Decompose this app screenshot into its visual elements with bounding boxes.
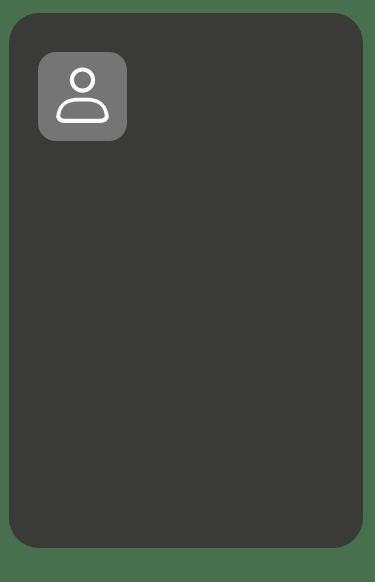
button[interactable]: Profile — [38, 52, 127, 141]
button[interactable]: Profile — [9, 13, 363, 548]
